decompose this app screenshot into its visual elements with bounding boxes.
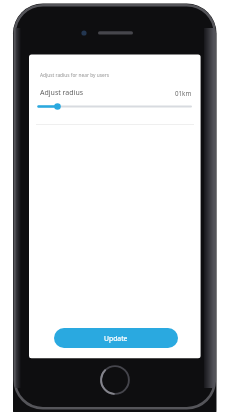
button[interactable]: Update bbox=[54, 328, 178, 348]
staticText: Update bbox=[104, 334, 128, 343]
staticText: Adjust radius for near by users bbox=[40, 72, 109, 79]
staticText: 01km bbox=[175, 89, 192, 97]
button[interactable] bbox=[36, 98, 194, 114]
staticText: Adjust radius bbox=[40, 88, 84, 98]
